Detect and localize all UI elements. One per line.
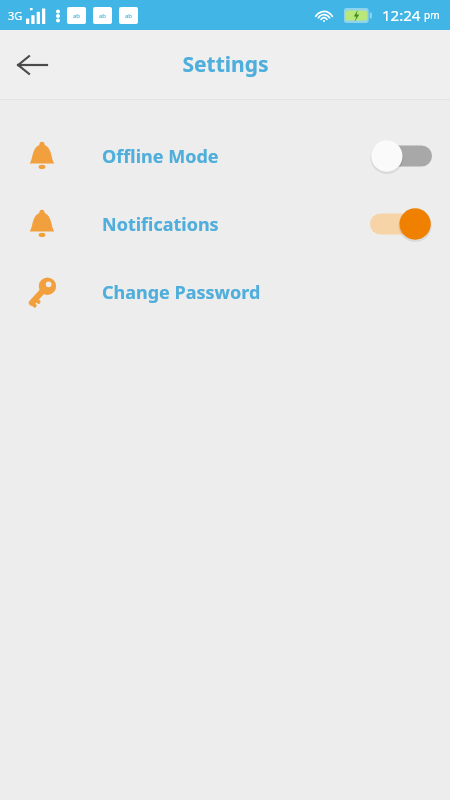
staticText: 3G bbox=[8, 8, 23, 23]
staticText: Notifications bbox=[102, 212, 219, 237]
staticText: 12:24 bbox=[382, 5, 421, 25]
button[interactable]: Back bbox=[6, 39, 58, 91]
staticText: ab bbox=[125, 12, 133, 20]
button[interactable]: Offline Mode bbox=[0, 122, 450, 190]
staticText: Change Password bbox=[102, 280, 261, 305]
staticText: pm bbox=[424, 8, 440, 22]
button[interactable]: Notifications bbox=[0, 190, 450, 258]
button[interactable]: Offline Mode toggle, off bbox=[370, 139, 432, 173]
staticText: Settings bbox=[182, 50, 269, 79]
staticText: Offline Mode bbox=[102, 144, 219, 169]
staticText: ab bbox=[99, 12, 107, 20]
staticText: ab bbox=[73, 12, 81, 20]
button[interactable]: Change Password bbox=[0, 258, 450, 326]
button[interactable]: Notifications toggle, on bbox=[370, 207, 432, 241]
